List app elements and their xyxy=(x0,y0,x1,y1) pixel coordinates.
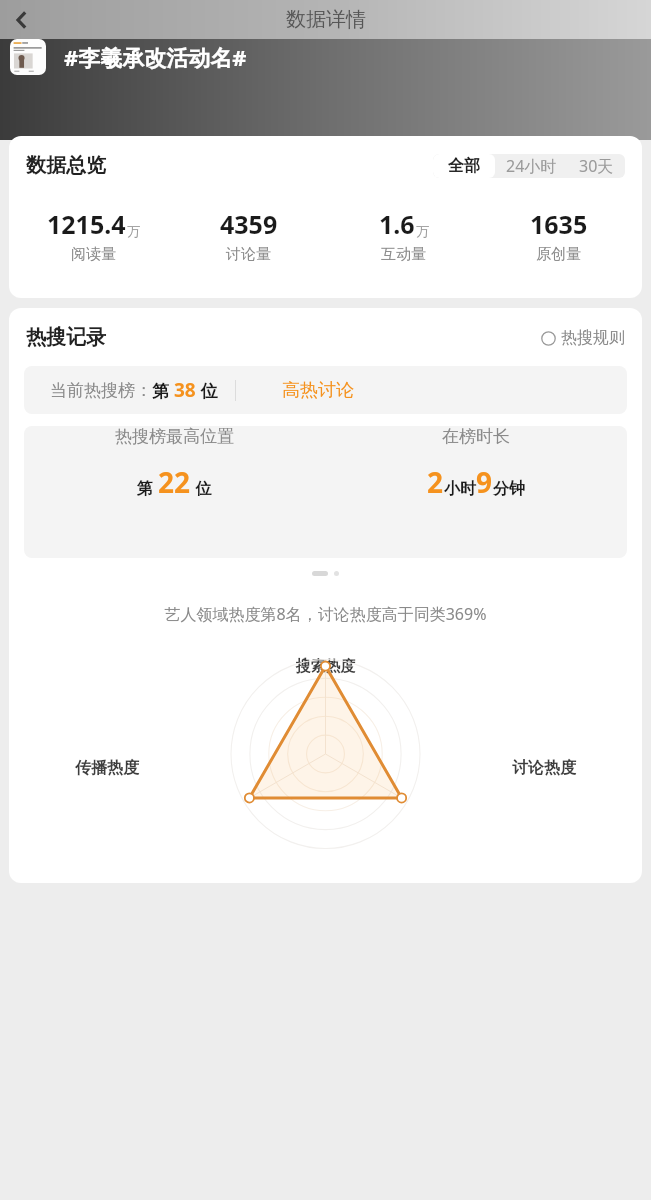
staticText: 阅读量 xyxy=(71,245,116,264)
staticText: 热搜榜最高位置 xyxy=(115,426,234,447)
staticText: 热搜规则 xyxy=(561,328,625,348)
button[interactable]: Back xyxy=(4,2,40,38)
staticText: 当前热搜榜： xyxy=(50,380,152,401)
staticText: 艺人领域热度第8名，讨论热度高于同类369% xyxy=(9,603,642,625)
staticText: 小时 xyxy=(444,479,476,499)
staticText: 位 xyxy=(191,477,212,499)
staticText: 互动量 xyxy=(381,245,426,264)
button[interactable]: 热搜榜最高位置 xyxy=(24,426,325,501)
staticText: 在榜时长 xyxy=(442,426,510,447)
staticText: 搜索热度 xyxy=(9,657,642,676)
staticText: 9 xyxy=(476,463,493,501)
button[interactable]: 4359 xyxy=(171,207,326,264)
staticText: 1215.4 xyxy=(47,207,126,241)
button[interactable]: 1635 xyxy=(481,207,636,264)
button[interactable]: 1.6 xyxy=(326,207,481,264)
staticText: 22 xyxy=(158,463,191,501)
staticText: 万 xyxy=(416,223,429,239)
button[interactable] xyxy=(10,39,46,75)
staticText: 位 xyxy=(196,379,218,402)
button[interactable]: 30天 xyxy=(568,154,625,178)
staticText: 2 xyxy=(427,463,444,501)
staticText: 讨论热度 xyxy=(512,758,576,778)
staticText: 38 xyxy=(174,377,196,403)
staticText: 热搜记录 xyxy=(26,325,106,350)
staticText: 讨论量 xyxy=(226,245,271,264)
staticText: #李羲承改活动名# xyxy=(64,42,247,72)
button[interactable]: 24小时 xyxy=(495,154,568,178)
staticText: 1635 xyxy=(530,207,588,241)
staticText: 第 xyxy=(152,379,174,402)
staticText: 原创量 xyxy=(536,245,581,264)
button[interactable]: 1215.4 xyxy=(15,207,171,264)
button[interactable]: 当前热搜榜： xyxy=(24,366,627,414)
staticText: 第 xyxy=(137,477,158,499)
staticText: 4359 xyxy=(220,207,278,241)
button[interactable]: 全部 xyxy=(433,154,495,178)
staticText: 1.6 xyxy=(379,207,415,241)
staticText: 分钟 xyxy=(493,479,525,499)
staticText: 数据详情 xyxy=(286,7,366,32)
staticText: 24小时 xyxy=(506,155,557,177)
staticText: 传播热度 xyxy=(75,758,139,778)
staticText: 万 xyxy=(127,223,140,239)
staticText: 30天 xyxy=(579,155,614,177)
staticText: 全部 xyxy=(448,156,480,176)
staticText: 数据总览 xyxy=(26,153,106,178)
staticText: 高热讨论 xyxy=(282,379,354,402)
button[interactable]: 热搜规则 xyxy=(541,328,625,348)
button[interactable]: 在榜时长 xyxy=(325,426,627,501)
